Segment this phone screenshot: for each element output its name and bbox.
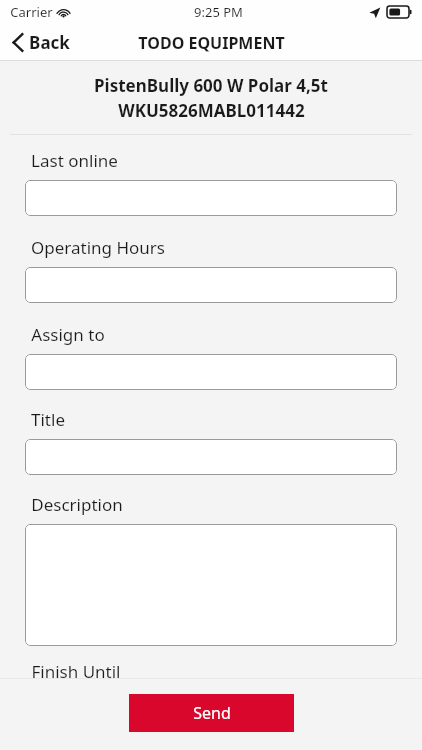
button[interactable] <box>25 524 397 646</box>
button[interactable] <box>25 439 397 475</box>
staticText: Description <box>31 493 123 516</box>
button[interactable] <box>25 691 397 727</box>
button[interactable] <box>25 354 397 390</box>
staticText: Title <box>31 408 65 431</box>
staticText: Operating Hours <box>31 236 165 259</box>
staticText: Back <box>29 31 70 54</box>
staticText: Carrier <box>10 3 53 21</box>
button[interactable] <box>25 180 397 216</box>
staticText: PistenBully 600 W Polar 4,5t <box>94 74 328 97</box>
button[interactable] <box>25 267 397 303</box>
button[interactable]: Send <box>129 694 294 732</box>
staticText: Assign to <box>31 323 105 346</box>
staticText: Send <box>193 702 231 724</box>
staticText: WKU5826MABL011442 <box>118 99 305 122</box>
staticText: Last online <box>31 149 118 172</box>
button[interactable]: Back <box>8 27 74 58</box>
staticText: Finish Until <box>31 660 121 683</box>
staticText: 9:25 PM <box>194 3 243 21</box>
staticText: TODO EQUIPMENT <box>138 32 285 54</box>
